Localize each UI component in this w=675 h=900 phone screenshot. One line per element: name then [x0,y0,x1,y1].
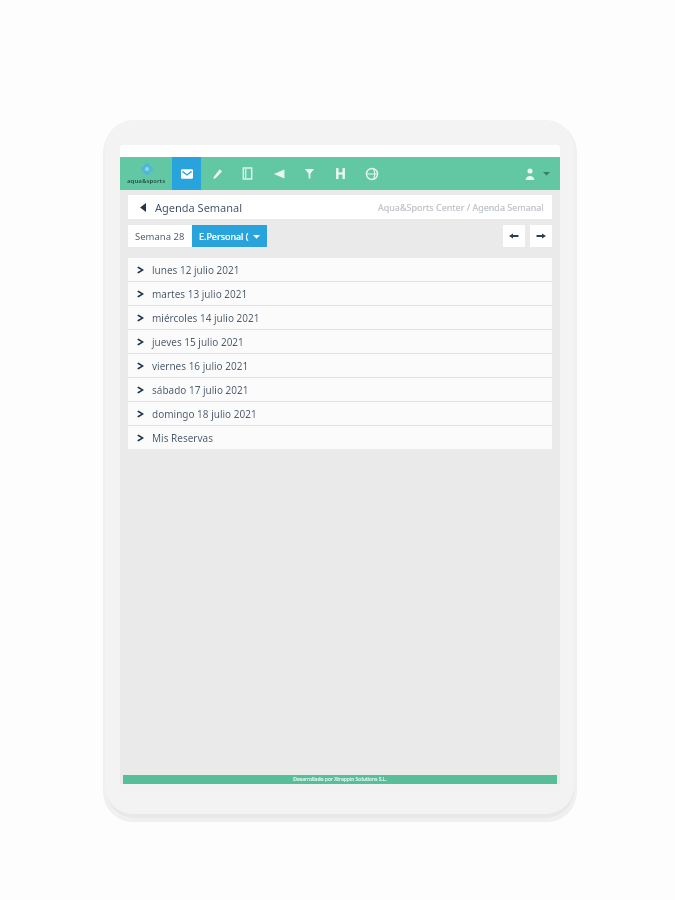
button[interactable]: Mis Reservas [128,426,552,449]
button[interactable]: Semana siguiente [530,225,552,247]
button[interactable]: Semana anterior [503,225,525,247]
staticText: miércoles 14 julio 2021 [152,311,260,325]
staticText: martes 13 julio 2021 [152,287,248,301]
button[interactable]: viernes 16 julio 2021 [128,354,552,377]
staticText: Desarrollado por Xtrappin Solutions S.L. [293,776,387,783]
button[interactable]: aqua&sports home [120,157,172,190]
button[interactable]: Usuario [524,157,550,190]
button[interactable]: martes 13 julio 2021 [128,282,552,305]
staticText: Mis Reservas [152,431,213,445]
button[interactable]: Semana 28 [128,225,192,247]
staticText: Aqua&Sports Center / Agenda Semanal [378,201,544,213]
button[interactable]: lunes 12 julio 2021 [128,258,552,281]
staticText: jueves 15 julio 2021 [152,335,244,349]
button[interactable]: miércoles 14 julio 2021 [128,306,552,329]
button[interactable]: Web [356,157,387,190]
button[interactable]: domingo 18 julio 2021 [128,402,552,425]
staticText: Agenda Semanal [155,200,243,215]
staticText: Semana 28 [135,230,185,243]
button[interactable]: Filtros [294,157,325,190]
button[interactable]: Agenda [172,157,201,190]
button[interactable]: Calendario [232,157,263,190]
button[interactable]: E.Personal ( [192,225,267,247]
button[interactable]: Instalaciones [325,157,356,190]
staticText: viernes 16 julio 2021 [152,359,249,373]
staticText: E.Personal ( [199,230,249,242]
button[interactable]: Actividades [201,157,232,190]
button[interactable]: sábado 17 julio 2021 [128,378,552,401]
staticText: lunes 12 julio 2021 [152,263,240,277]
button[interactable]: Megafonia [263,157,294,190]
staticText: aqua&sports [127,177,166,185]
button[interactable]: Atrás [136,200,150,214]
button[interactable]: jueves 15 julio 2021 [128,330,552,353]
staticText: domingo 18 julio 2021 [152,407,257,421]
staticText: sábado 17 julio 2021 [152,383,249,397]
